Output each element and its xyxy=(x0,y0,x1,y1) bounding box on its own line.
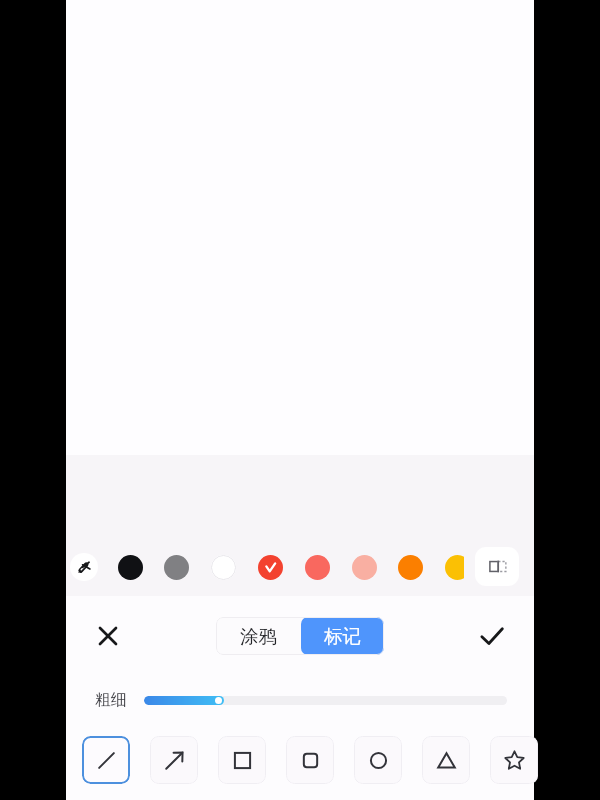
button[interactable]: Square xyxy=(218,736,266,784)
button[interactable]: Orange xyxy=(398,555,423,580)
staticText: 粗细 xyxy=(95,690,127,710)
button[interactable]: Coral xyxy=(305,555,330,580)
button[interactable]: 涂鸦 xyxy=(216,617,301,655)
button[interactable]: White xyxy=(211,555,236,580)
button[interactable]: Yellow xyxy=(445,555,464,580)
button[interactable]: Line xyxy=(82,736,130,784)
button[interactable]: Cancel xyxy=(93,621,123,651)
button[interactable]: Circle xyxy=(354,736,402,784)
button[interactable]: Rounded square xyxy=(286,736,334,784)
button[interactable]: Black xyxy=(118,555,143,580)
staticText: 标记 xyxy=(324,625,361,648)
button[interactable]: 标记 xyxy=(301,617,384,655)
button[interactable]: Thickness xyxy=(144,696,507,705)
button[interactable]: Red (selected) xyxy=(258,555,283,580)
button[interactable]: Triangle xyxy=(422,736,470,784)
button[interactable]: Star xyxy=(490,736,538,784)
button[interactable]: Pink xyxy=(352,555,377,580)
button[interactable]: Grey xyxy=(164,555,189,580)
button[interactable]: Fill style xyxy=(475,547,519,586)
button[interactable]: Done xyxy=(477,621,507,651)
staticText: 涂鸦 xyxy=(240,625,277,648)
button[interactable]: Arrow xyxy=(150,736,198,784)
button[interactable]: Colour picker xyxy=(70,553,98,581)
